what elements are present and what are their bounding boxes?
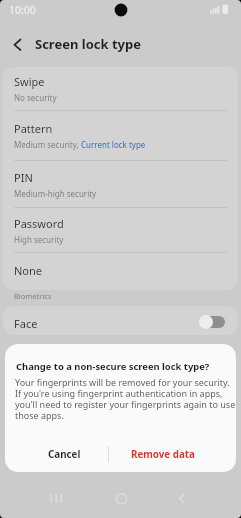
staticText: Face: [14, 316, 38, 331]
staticText: None: [14, 263, 43, 278]
staticText: you'll need to register your fingerprint…: [15, 398, 236, 410]
button[interactable]: [6, 34, 28, 56]
button[interactable]: [199, 314, 226, 329]
staticText: Screen lock type: [35, 35, 141, 53]
staticText: PIN: [14, 170, 33, 185]
button[interactable]: None: [3, 253, 238, 290]
staticText: Biometrics: [14, 291, 52, 301]
staticText: 10:00: [9, 3, 36, 17]
button[interactable]: Cancel: [25, 440, 103, 468]
button[interactable]: Swipe: [3, 67, 238, 110]
staticText: No security: [14, 92, 57, 103]
staticText: Change to a non-secure screen lock type?: [16, 360, 210, 373]
staticText: High security: [14, 234, 64, 245]
button[interactable]: [106, 488, 136, 510]
staticText: Your fingerprints will be removed for yo…: [15, 376, 230, 388]
button[interactable]: Face: [3, 306, 238, 335]
button[interactable]: PIN: [3, 161, 238, 207]
staticText: those apps.: [15, 409, 64, 421]
button[interactable]: Pattern: [3, 111, 238, 160]
staticText: Password: [14, 216, 64, 231]
staticText: Pattern: [14, 121, 53, 136]
staticText: If you're using fingerprint authenticati…: [15, 387, 223, 399]
staticText: Cancel: [48, 448, 81, 461]
staticText: Medium security,: [14, 139, 81, 150]
staticText: Medium-high security: [14, 188, 97, 199]
button[interactable]: [40, 488, 70, 510]
button[interactable]: Password: [3, 208, 238, 252]
staticText: Current lock type: [81, 139, 146, 150]
button[interactable]: Remove data: [117, 440, 209, 468]
staticText: Swipe: [14, 74, 45, 89]
staticText: Remove data: [131, 448, 195, 461]
